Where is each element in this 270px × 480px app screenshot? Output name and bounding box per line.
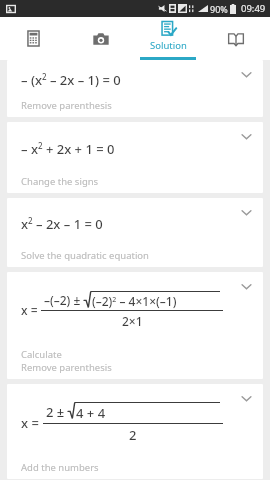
staticText: Remove parenthesis (21, 361, 112, 374)
button[interactable]: Camera (67, 17, 134, 60)
staticText: Solve the quadratic equation (21, 249, 149, 262)
staticText: 2 (129, 426, 137, 444)
staticText: 09:49 (241, 2, 266, 15)
staticText: (–2)2 – 4×1×(–1) (92, 293, 177, 309)
button[interactable]: x = (7, 384, 263, 479)
staticText: 90% (210, 3, 228, 15)
staticText: – (x2 – 2x – 1) = 0 (21, 71, 121, 89)
button[interactable]: Expand step (241, 131, 252, 142)
staticText: 2×1 (122, 313, 143, 329)
staticText: x2 – 2x – 1 = 0 (21, 215, 103, 233)
staticText: –(–2) ± (44, 292, 84, 308)
button[interactable]: – x2 + 2x + 1 = 0 (7, 122, 263, 193)
staticText: Add the numbers (21, 461, 99, 474)
staticText: x = (21, 414, 43, 432)
button[interactable]: Calculator (0, 17, 67, 60)
staticText: Calculate (21, 348, 62, 361)
staticText: Change the signs (21, 175, 99, 188)
button[interactable]: x2 – 2x – 1 = 0 (7, 198, 263, 267)
button[interactable]: x = (7, 272, 263, 379)
staticText: 4 + 4 (76, 404, 106, 422)
button[interactable]: Expand step (241, 69, 252, 80)
staticText: x = (21, 302, 41, 318)
button[interactable]: Expand step (241, 393, 252, 404)
button[interactable]: Solution (134, 17, 202, 60)
button[interactable]: Book (202, 17, 270, 60)
staticText: Solution (150, 39, 187, 52)
button[interactable]: Expand step (241, 281, 252, 292)
staticText: Remove parenthesis (21, 99, 112, 112)
button[interactable]: – (x2 – 2x – 1) = 0 (7, 60, 263, 117)
button[interactable]: Expand step (241, 207, 252, 218)
staticText: 2 ± (46, 403, 68, 421)
staticText: – x2 + 2x + 1 = 0 (21, 140, 115, 158)
